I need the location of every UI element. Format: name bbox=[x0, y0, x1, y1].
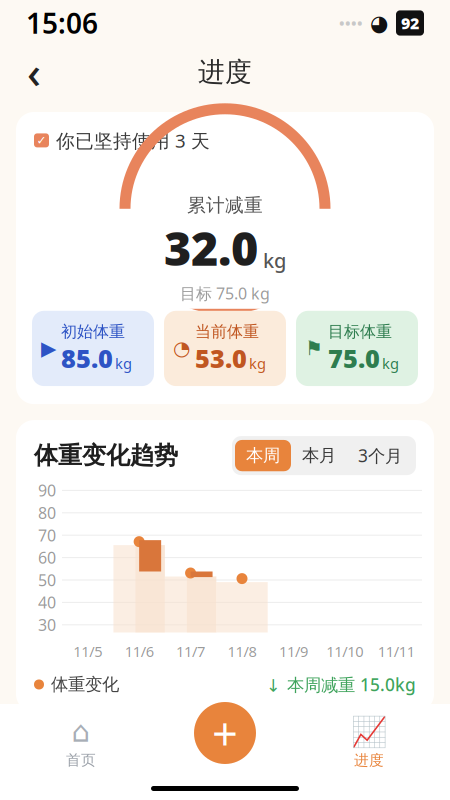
staticText: 30 bbox=[38, 614, 56, 635]
staticText: 92 bbox=[401, 12, 419, 34]
button[interactable]: ⚑ bbox=[296, 311, 418, 386]
staticText: 50 bbox=[38, 569, 56, 591]
button[interactable]: 本周 bbox=[235, 440, 291, 471]
staticText: kg bbox=[263, 247, 286, 274]
staticText: 11/5 bbox=[73, 641, 102, 661]
staticText: 90 bbox=[38, 480, 56, 501]
staticText: 11/7 bbox=[176, 641, 205, 661]
staticText: kg bbox=[382, 354, 399, 373]
button[interactable]: 返回 bbox=[12, 50, 56, 94]
staticText: 11/6 bbox=[125, 641, 154, 661]
staticText: •••• bbox=[339, 13, 363, 33]
staticText: ⚑ bbox=[305, 337, 323, 360]
staticText: 70 bbox=[38, 525, 56, 546]
staticText: 📈 bbox=[350, 715, 387, 748]
staticText: kg bbox=[115, 354, 132, 373]
staticText: ▶ bbox=[41, 337, 56, 360]
staticText: 15:06 bbox=[26, 4, 98, 42]
staticText: 85.0 bbox=[61, 341, 113, 375]
staticText: kg bbox=[249, 354, 266, 373]
staticText: 进度 bbox=[198, 56, 252, 88]
staticText: 11/11 bbox=[378, 641, 415, 661]
staticText: 75.0 bbox=[328, 341, 380, 375]
staticText: ◔ bbox=[173, 337, 190, 360]
staticText: 进度 bbox=[354, 751, 384, 769]
button[interactable]: ▶ bbox=[32, 311, 154, 386]
staticText: 32.0 bbox=[164, 217, 258, 279]
staticText: 11/8 bbox=[227, 641, 256, 661]
button[interactable]: ◔ bbox=[164, 311, 286, 386]
staticText: 80 bbox=[38, 502, 56, 523]
staticText: 你已坚持使用 3 天 bbox=[56, 128, 210, 153]
staticText: 11/10 bbox=[326, 641, 363, 661]
staticText: 11/9 bbox=[279, 641, 308, 661]
staticText: + bbox=[212, 703, 238, 763]
staticText: 60 bbox=[38, 547, 56, 568]
staticText: ⌂ bbox=[71, 715, 90, 748]
staticText: ◕ bbox=[370, 11, 389, 35]
staticText: 53.0 bbox=[195, 341, 247, 375]
staticText: ‹ bbox=[27, 44, 41, 100]
staticText: ✓ bbox=[36, 134, 46, 147]
button[interactable]: 添加记录 bbox=[194, 702, 256, 764]
button[interactable]: 📈 bbox=[338, 715, 400, 769]
staticText: 目标 75.0 kg bbox=[180, 283, 270, 304]
staticText: 当前体重 bbox=[195, 322, 259, 341]
button[interactable]: ⌂ bbox=[50, 715, 112, 769]
staticText: 3个月 bbox=[358, 444, 402, 467]
staticText: ↓ 本周减重 15.0kg bbox=[266, 673, 416, 696]
button[interactable]: 本月 bbox=[291, 440, 347, 471]
staticText: 目标体重 bbox=[328, 322, 392, 341]
staticText: 本月 bbox=[302, 445, 336, 466]
staticText: 40 bbox=[38, 592, 56, 613]
staticText: 体重变化 bbox=[51, 674, 119, 695]
button[interactable]: 3个月 bbox=[347, 439, 413, 472]
staticText: 本周 bbox=[246, 445, 280, 466]
staticText: 累计减重 bbox=[187, 194, 263, 217]
staticText: 体重变化趋势 bbox=[34, 441, 178, 470]
staticText: 首页 bbox=[66, 751, 96, 769]
staticText: 初始体重 bbox=[61, 322, 125, 341]
